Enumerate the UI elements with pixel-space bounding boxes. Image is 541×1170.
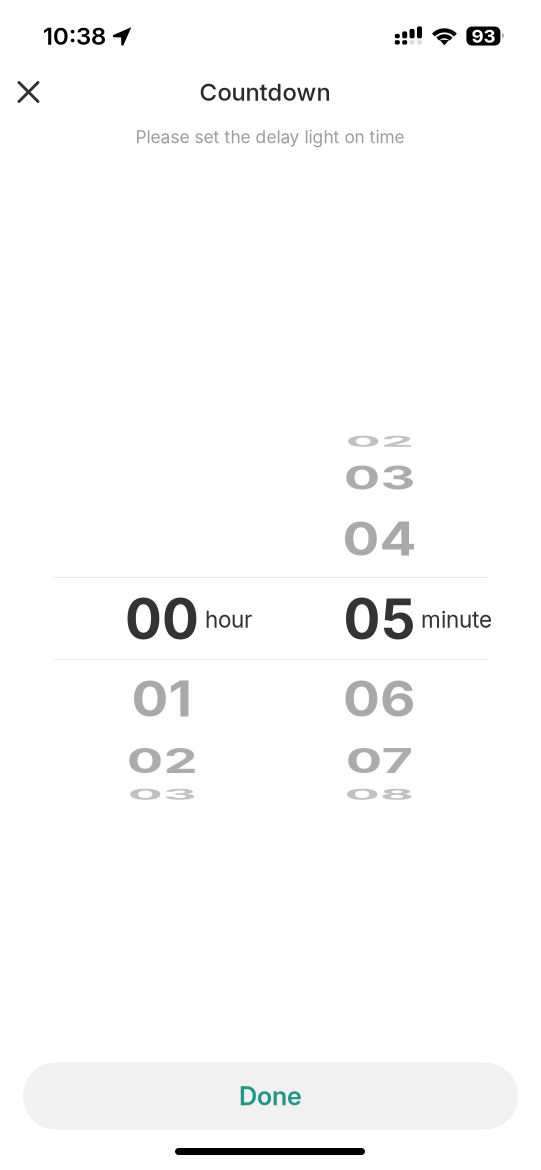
staticText: 05 [343, 585, 415, 651]
staticText: hour [205, 606, 252, 633]
staticText: 08 [343, 761, 416, 827]
button[interactable]: Close [5, 69, 51, 115]
staticText: 03 [126, 761, 198, 827]
staticText: 04 [342, 505, 416, 571]
staticText: 06 [343, 665, 416, 731]
staticText: 10:38 [43, 21, 106, 50]
button[interactable]: 05 minute [0, 0, 541, 1170]
staticText: Done [239, 1081, 302, 1111]
staticText: 01 [131, 665, 192, 731]
staticText: 03 [343, 444, 415, 510]
button[interactable]: Done [23, 1062, 518, 1129]
button[interactable]: 00 hour [0, 0, 541, 1170]
staticText: 07 [345, 727, 413, 793]
staticText: 02 [344, 408, 415, 474]
staticText: 02 [126, 727, 197, 793]
staticText: Please set the delay light on time [135, 126, 404, 147]
staticText: minute [421, 606, 492, 633]
staticText: Countdown [199, 77, 330, 106]
staticText: 00 [125, 585, 199, 651]
staticText: 93 [471, 25, 495, 47]
